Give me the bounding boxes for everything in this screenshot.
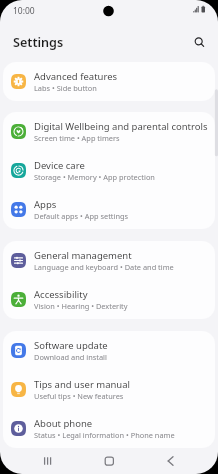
staticText: Default apps • App settings: [34, 211, 129, 221]
staticText: Screen time • App timers: [34, 133, 120, 143]
staticText: Language and keyboard • Date and time: [34, 262, 174, 272]
button[interactable]: Tips and user manual: [3, 370, 215, 409]
button[interactable]: Apps: [3, 190, 215, 229]
staticText: Apps: [34, 198, 57, 211]
staticText: Useful tips • New features: [34, 391, 124, 401]
staticText: Accessibility: [34, 288, 88, 301]
button[interactable]: Digital Wellbeing and parental controls: [3, 112, 215, 151]
staticText: Vision • Hearing • Dexterity: [34, 301, 128, 311]
staticText: Status • Legal information • Phone name: [34, 430, 175, 440]
staticText: Download and install: [34, 352, 107, 362]
button[interactable]: About phone: [3, 409, 215, 448]
staticText: Labs • Side button: [34, 83, 97, 93]
button[interactable]: Advanced features: [3, 62, 215, 101]
button[interactable]: Software update: [3, 331, 215, 370]
button[interactable]: Back: [135, 448, 197, 474]
staticText: Advanced features: [34, 70, 118, 83]
staticText: Tips and user manual: [34, 378, 131, 391]
staticText: Device care: [34, 159, 85, 172]
button[interactable]: Device care: [3, 151, 215, 190]
button[interactable]: Accessibility: [3, 280, 215, 319]
staticText: Storage • Memory • App protection: [34, 172, 155, 182]
staticText: Digital Wellbeing and parental controls: [34, 120, 208, 133]
staticText: General management: [34, 249, 132, 262]
staticText: Settings: [13, 34, 64, 51]
staticText: About phone: [34, 417, 93, 430]
button[interactable]: Search: [187, 30, 211, 54]
staticText: Software update: [34, 339, 108, 352]
button[interactable]: Home: [73, 448, 135, 474]
staticText: 10:00: [13, 5, 35, 17]
button[interactable]: General management: [3, 241, 215, 280]
button[interactable]: Recent apps: [0, 448, 73, 474]
